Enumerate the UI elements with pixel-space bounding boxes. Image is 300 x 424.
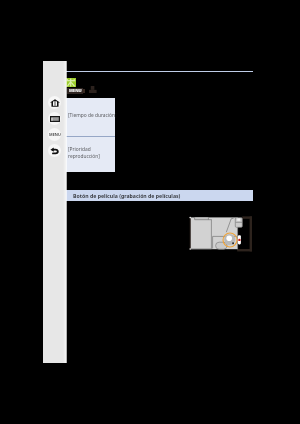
button[interactable]: Menú: [48, 128, 61, 141]
staticText: Botón de película (grabación de película…: [73, 192, 181, 199]
staticText: MENU: [69, 88, 82, 94]
button[interactable]: Botón de película (grabación de película…: [66, 190, 253, 201]
button[interactable]: Atrás: [48, 144, 61, 157]
button[interactable]: Inicio: [48, 96, 61, 109]
staticText: [Prioridad reproducción]: [68, 146, 100, 159]
staticText: [Tiempo de duración]: [68, 112, 117, 119]
staticText: MENU: [49, 132, 61, 137]
button[interactable]: Pantalla: [48, 112, 61, 125]
button[interactable]: [Tiempo de duración]: [66, 98, 115, 172]
